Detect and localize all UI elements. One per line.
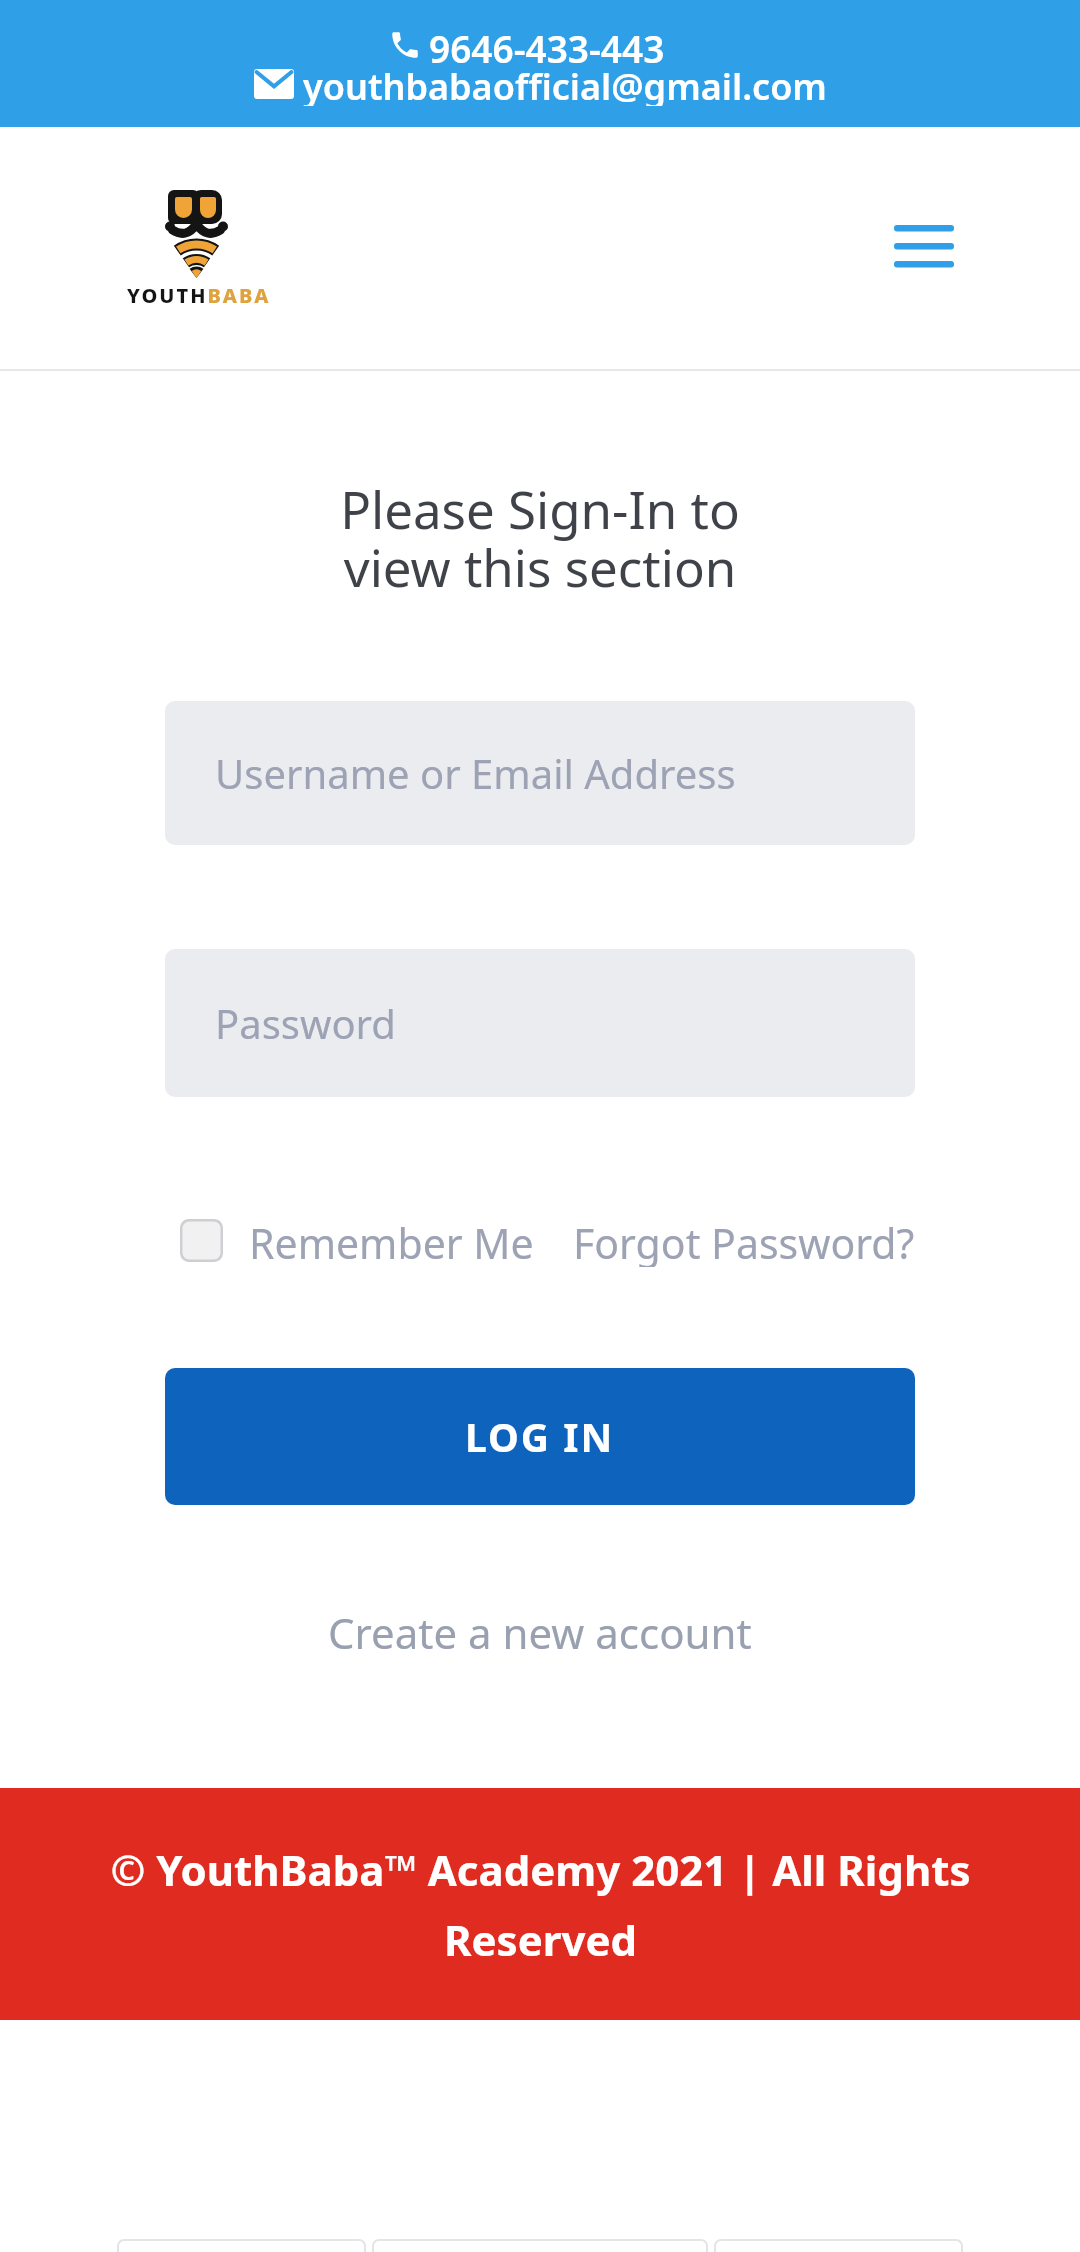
staticText: 9646-433-443	[429, 23, 665, 67]
button[interactable]: Username or Email Address	[165, 701, 915, 845]
button[interactable]: LOG IN	[165, 1368, 915, 1505]
staticText: youthbabaofficial@gmail.com	[303, 62, 827, 106]
staticText: Password	[215, 996, 396, 1050]
button[interactable]: 9646-433-443	[388, 23, 665, 67]
staticText: © YouthBaba™ Academy 2021 | All Rights R…	[110, 1841, 971, 1968]
staticText: Please Sign-In to view this section	[0, 474, 1080, 601]
button[interactable]	[180, 1219, 223, 1262]
button[interactable]: Forgot Password?	[573, 1215, 915, 1267]
button[interactable]: Password	[165, 949, 915, 1097]
staticText: Username or Email Address	[215, 746, 736, 800]
staticText: Remember Me	[249, 1215, 534, 1267]
button[interactable]: Remember Me	[249, 1215, 534, 1267]
button[interactable]: youthbabaofficial@gmail.com	[254, 62, 827, 106]
staticText: LOG IN	[465, 1410, 615, 1463]
button[interactable]	[880, 212, 968, 280]
staticText: YOUTHBABA	[127, 282, 271, 309]
button[interactable]: Create a new account	[328, 1604, 752, 1661]
button[interactable]: YOUTHBABA	[127, 185, 327, 307]
